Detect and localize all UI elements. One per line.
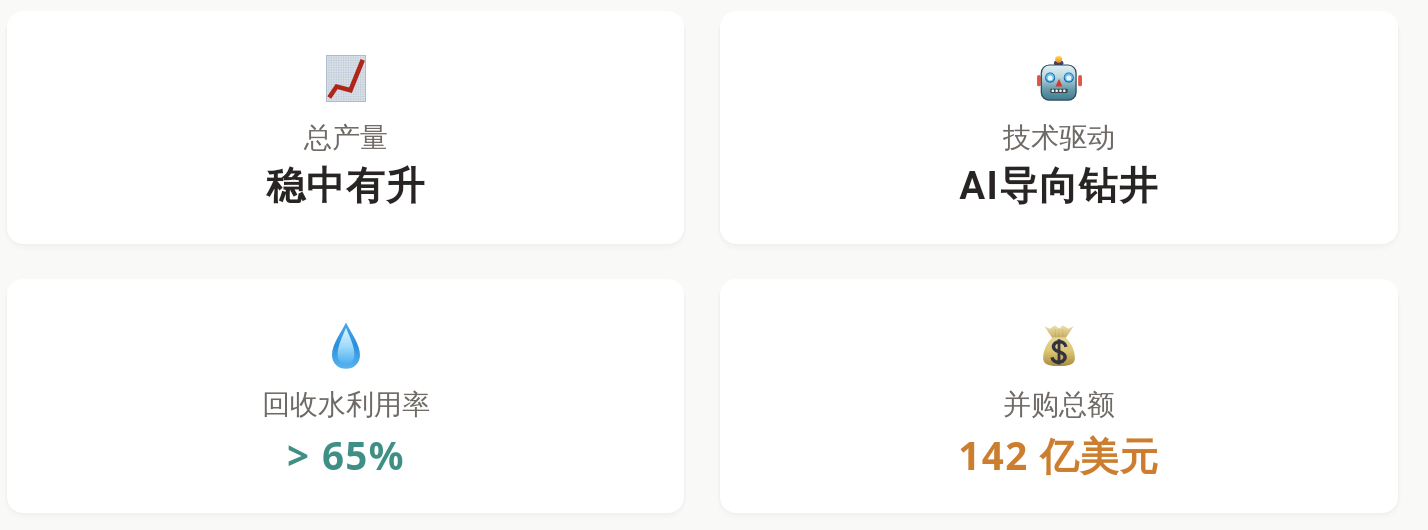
staticText: 技术驱动 [1003,120,1115,155]
staticText: 并购总额 [1003,387,1115,422]
button[interactable]: Rising chart [7,11,684,244]
staticText: > 65% [287,429,405,481]
other: Money bag [1041,324,1077,366]
button[interactable]: Robot [720,11,1398,244]
button[interactable]: Water droplet [7,279,684,513]
other: Robot [1037,55,1082,101]
other: Water droplet [332,322,360,369]
other: Rising chart [326,55,366,102]
staticText: 稳中有升 [266,162,426,211]
staticText: 回收水利用率 [262,387,430,422]
staticText: 总产量 [304,120,388,155]
staticText: AI导向钻井 [959,162,1159,211]
button[interactable]: Money bag [720,279,1398,513]
staticText: 142 亿美元 [958,429,1160,482]
